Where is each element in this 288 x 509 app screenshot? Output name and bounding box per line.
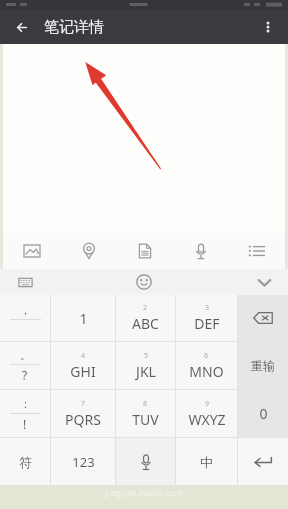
staticText: jingyan.baidu.com xyxy=(105,486,183,498)
staticText: GHI xyxy=(70,362,96,381)
staticText: 中 xyxy=(200,454,213,470)
staticText: 3 xyxy=(205,303,210,313)
button[interactable]: 4 xyxy=(51,342,115,389)
button[interactable]: 7 xyxy=(51,390,115,437)
button[interactable]: 3 xyxy=(176,295,237,341)
staticText: ! xyxy=(23,416,27,432)
button[interactable]: Insert document xyxy=(117,233,173,269)
button[interactable]: 8 xyxy=(116,390,175,437)
staticText: 6 xyxy=(204,351,209,361)
button[interactable]: ， xyxy=(0,295,50,341)
staticText: ? xyxy=(22,367,28,383)
staticText: ABC xyxy=(132,314,159,333)
button[interactable]: Voice input xyxy=(116,438,175,485)
staticText: 符 xyxy=(19,454,32,470)
button[interactable]: Delete xyxy=(238,295,288,341)
button[interactable]: Keyboard layout xyxy=(12,269,38,295)
button[interactable]: 123 xyxy=(51,438,115,485)
button[interactable]: : xyxy=(0,390,50,437)
button[interactable]: Insert location xyxy=(60,233,117,269)
button[interactable]: Enter xyxy=(238,438,288,485)
button[interactable]: 1 xyxy=(51,295,115,341)
staticText: 7 xyxy=(81,399,86,409)
button[interactable]: 重输 xyxy=(238,342,288,389)
staticText: WXYZ xyxy=(188,410,226,429)
staticText: PQRS xyxy=(65,410,101,429)
staticText: 4 xyxy=(81,351,86,361)
button[interactable]: More options xyxy=(248,10,288,44)
staticText: 5 xyxy=(144,351,149,361)
button[interactable]: 2 xyxy=(116,295,175,341)
staticText: TUV xyxy=(132,410,159,429)
staticText: : xyxy=(24,396,27,411)
staticText: 0 xyxy=(259,404,268,423)
button[interactable]: 符 xyxy=(0,438,50,485)
button[interactable]: Checklist xyxy=(229,233,285,269)
button[interactable]: Insert image xyxy=(3,233,60,269)
button[interactable]: 0 xyxy=(238,390,288,437)
button[interactable]: 9 xyxy=(176,390,237,437)
staticText: 8 xyxy=(143,399,148,409)
staticText: 笔记详情 xyxy=(44,18,104,37)
staticText: 9 xyxy=(205,399,210,409)
button[interactable]: 6 xyxy=(176,342,237,389)
button[interactable]: Hide keyboard xyxy=(250,269,278,295)
button[interactable]: 。 xyxy=(0,342,50,389)
staticText: JKL xyxy=(136,362,156,381)
staticText: 重输 xyxy=(251,358,275,373)
button[interactable]: Voice input xyxy=(173,233,229,269)
button[interactable] xyxy=(3,44,285,233)
staticText: 1 xyxy=(79,309,88,328)
staticText: ， xyxy=(20,303,31,317)
staticText: 123 xyxy=(72,453,95,471)
button[interactable]: Emoji xyxy=(131,269,157,295)
button[interactable]: Back xyxy=(0,10,44,44)
staticText: 2 xyxy=(143,303,148,313)
staticText: MNO xyxy=(189,362,224,381)
button[interactable]: 5 xyxy=(116,342,175,389)
staticText: DEF xyxy=(194,314,220,333)
staticText: 。 xyxy=(20,348,31,362)
button[interactable]: 中 xyxy=(176,438,237,485)
